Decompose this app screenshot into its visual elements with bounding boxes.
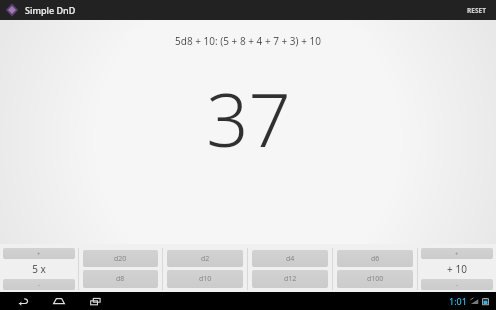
button[interactable]: Back — [12, 292, 34, 310]
button[interactable]: Recent apps — [84, 292, 106, 310]
staticText: 5 x — [32, 262, 46, 276]
staticText: d6 — [371, 254, 380, 264]
staticText: + — [455, 250, 459, 258]
staticText: d2 — [201, 254, 210, 264]
staticText: 5d8 + 10: (5 + 8 + 4 + 7 + 3) + 10 — [0, 34, 496, 48]
button[interactable]: Increase — [3, 248, 75, 259]
staticText: 1:01 — [449, 295, 467, 307]
button[interactable]: d10 — [167, 270, 243, 288]
staticText: RESET — [467, 6, 486, 15]
button[interactable]: d20 — [83, 250, 158, 267]
button[interactable]: Home — [48, 292, 70, 310]
staticText: + 10 — [447, 262, 467, 276]
button[interactable]: RESET — [459, 2, 494, 19]
button[interactable]: d100 — [337, 270, 413, 288]
staticText: d4 — [286, 254, 295, 264]
staticText: d8 — [116, 274, 125, 284]
button[interactable]: d2 — [167, 250, 243, 267]
staticText: Simple DnD — [25, 4, 76, 16]
button[interactable]: d12 — [252, 270, 328, 288]
staticText: d100 — [367, 274, 384, 284]
button[interactable]: d8 — [83, 270, 158, 288]
button[interactable]: d6 — [337, 250, 413, 267]
staticText: 37 — [206, 68, 291, 169]
staticText: - — [456, 281, 458, 289]
staticText: d20 — [114, 254, 127, 264]
staticText: - — [38, 281, 40, 289]
button[interactable]: Increase — [421, 248, 493, 259]
button[interactable]: d4 — [252, 250, 328, 267]
staticText: d12 — [284, 274, 297, 284]
staticText: + — [37, 250, 41, 258]
staticText: d10 — [199, 274, 212, 284]
